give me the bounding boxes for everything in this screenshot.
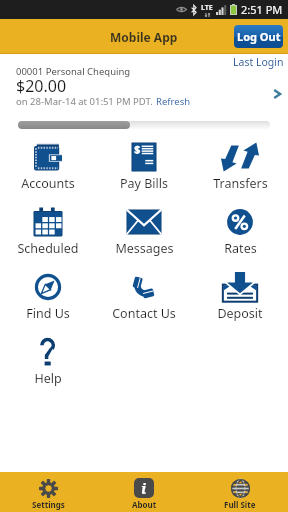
staticText: Find Us xyxy=(26,305,70,322)
staticText: on 28-Mar-14 at 01:51 PM PDT. xyxy=(16,95,156,108)
button[interactable]: Deposit xyxy=(192,267,288,332)
button[interactable]: Log Out xyxy=(234,25,283,48)
button[interactable]: Find Us xyxy=(0,267,96,332)
staticText: LTE xyxy=(201,3,213,13)
staticText: Messages xyxy=(115,240,174,257)
staticText: About xyxy=(132,499,157,510)
staticText: Rates xyxy=(224,240,257,257)
staticText: Accounts xyxy=(21,175,75,192)
staticText: Log Out xyxy=(237,29,281,44)
staticText: Transfers xyxy=(213,175,268,192)
button[interactable]: Scheduled xyxy=(0,202,96,267)
staticText: Settings xyxy=(32,499,65,510)
button[interactable]: i xyxy=(96,472,192,512)
button[interactable]: Contact Us xyxy=(96,267,192,332)
staticText: Contact Us xyxy=(112,305,176,322)
staticText: Pay Bills xyxy=(120,175,168,192)
staticText: Scheduled xyxy=(17,240,79,257)
button[interactable]: Accounts xyxy=(0,137,96,202)
button[interactable]: Next account xyxy=(270,87,284,101)
staticText: $20.00 xyxy=(16,75,67,97)
staticText: Deposit xyxy=(217,305,263,322)
staticText: Full Site xyxy=(224,499,256,510)
staticText: Help xyxy=(34,370,62,387)
staticText: Mobile App xyxy=(110,29,178,45)
button[interactable]: Rates xyxy=(192,202,288,267)
staticText: 2:51 PM xyxy=(241,2,283,17)
button[interactable]: Full Site xyxy=(192,472,288,512)
button[interactable]: Settings xyxy=(0,472,96,512)
button[interactable]: Help xyxy=(0,332,96,397)
staticText: 00001 Personal Chequing xyxy=(16,65,131,78)
button[interactable]: Last Login xyxy=(233,55,284,69)
staticText: i xyxy=(141,478,147,498)
button[interactable]: Pay Bills xyxy=(96,137,192,202)
button[interactable]: Refresh xyxy=(156,95,191,108)
button[interactable]: Transfers xyxy=(192,137,288,202)
button[interactable]: Messages xyxy=(96,202,192,267)
